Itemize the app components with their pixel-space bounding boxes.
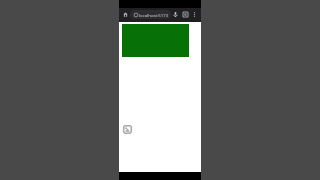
button[interactable]: More options <box>190 10 199 19</box>
staticText: localhost:5173 <box>139 12 169 18</box>
button[interactable]: Switch tabs <box>181 10 190 19</box>
button[interactable]: localhost:5173 <box>130 10 171 19</box>
button[interactable]: Home <box>121 10 130 19</box>
button[interactable]: Voice search <box>171 10 180 19</box>
